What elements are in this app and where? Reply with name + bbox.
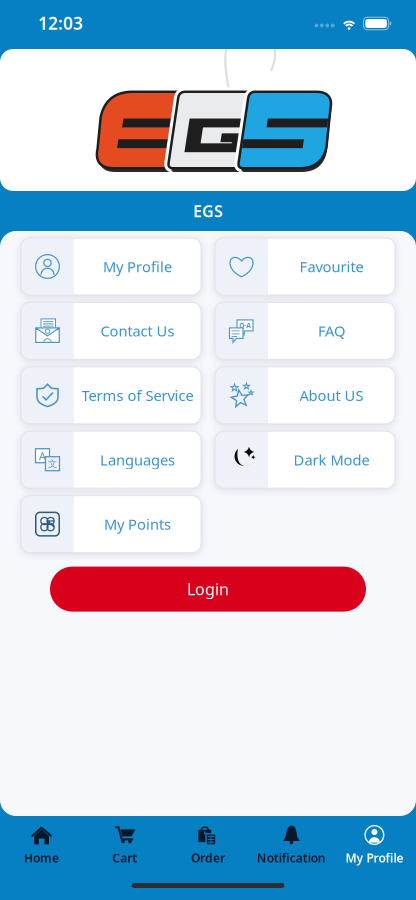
- staticText: Cart: [112, 850, 137, 866]
- staticText: A: [39, 449, 46, 463]
- button[interactable]: My Points: [21, 496, 201, 553]
- button[interactable]: Cart: [83, 825, 166, 866]
- staticText: My Profile: [103, 257, 172, 276]
- button[interactable]: My Profile: [333, 825, 416, 866]
- button[interactable]: Terms of Service: [21, 367, 201, 424]
- staticText: My Profile: [345, 850, 403, 866]
- staticText: About US: [299, 386, 363, 405]
- staticText: Contact Us: [100, 321, 174, 341]
- button[interactable]: Order: [166, 825, 250, 866]
- staticText: My Points: [104, 514, 171, 534]
- staticText: 文: [48, 458, 57, 470]
- button[interactable]: A: [21, 431, 201, 488]
- staticText: 12:03: [38, 11, 83, 34]
- staticText: Languages: [100, 450, 175, 469]
- staticText: Terms of Service: [81, 386, 193, 405]
- staticText: Login: [187, 578, 229, 600]
- staticText: Notification: [257, 850, 326, 866]
- staticText: Favourite: [299, 257, 363, 276]
- staticText: Q·A: [239, 321, 251, 330]
- staticText: EGS: [193, 200, 223, 222]
- button[interactable]: About US: [215, 367, 395, 424]
- button[interactable]: Contact Us: [21, 302, 201, 359]
- staticText: FAQ: [318, 321, 345, 341]
- staticText: Dark Mode: [293, 450, 369, 469]
- button[interactable]: Q·A: [215, 302, 395, 359]
- button[interactable]: Login: [50, 567, 366, 612]
- button[interactable]: Dark Mode: [215, 431, 395, 488]
- button[interactable]: Favourite: [215, 238, 395, 295]
- staticText: Home: [24, 850, 59, 866]
- staticText: Order: [191, 850, 225, 866]
- button[interactable]: Home: [0, 825, 83, 866]
- button[interactable]: Notification: [250, 825, 333, 866]
- button[interactable]: My Profile: [21, 238, 201, 295]
